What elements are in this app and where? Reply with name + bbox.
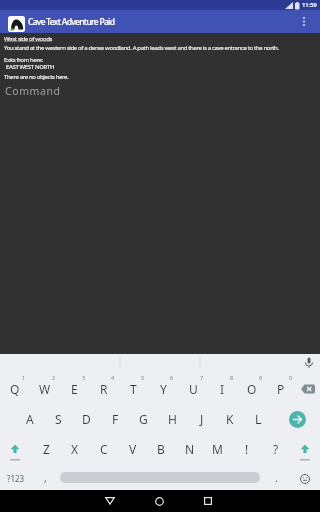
staticText: .	[275, 471, 278, 485]
staticText: 7	[200, 374, 204, 381]
staticText: West side of woods	[4, 35, 52, 43]
staticText: N	[185, 441, 195, 457]
staticText: Q	[10, 381, 20, 397]
staticText: 3	[82, 374, 86, 381]
button[interactable]: S	[44, 404, 73, 434]
staticText: S	[55, 411, 62, 427]
staticText: T	[130, 381, 137, 397]
staticText: 4	[111, 374, 115, 381]
button[interactable]	[290, 434, 320, 464]
button[interactable]	[280, 404, 314, 434]
staticText: !	[245, 441, 249, 457]
button[interactable]: A	[15, 404, 44, 434]
button[interactable]	[194, 490, 222, 512]
staticText: 2	[52, 374, 56, 381]
button[interactable]: F	[101, 404, 130, 434]
staticText: F	[112, 411, 119, 427]
button[interactable]	[296, 374, 320, 404]
button[interactable]	[60, 472, 260, 483]
staticText: H	[168, 411, 177, 427]
button[interactable]: Command	[0, 84, 200, 100]
button[interactable]: Q	[0, 374, 30, 404]
staticText: Command	[5, 84, 61, 98]
button[interactable]: O	[237, 374, 267, 404]
staticText: Y	[160, 381, 167, 397]
button[interactable]: V	[118, 434, 147, 464]
staticText: ,	[44, 471, 47, 485]
staticText: 0	[289, 374, 293, 381]
button[interactable]: I	[207, 374, 237, 404]
staticText: 1	[22, 374, 26, 381]
staticText: C	[100, 441, 108, 457]
staticText: ?	[273, 441, 279, 457]
staticText: J	[200, 411, 204, 427]
button[interactable]: J	[187, 404, 216, 434]
button[interactable]: ,	[35, 464, 55, 492]
staticText: 5	[141, 374, 145, 381]
staticText: There are no objects here.	[4, 73, 69, 81]
staticText: D	[82, 411, 91, 427]
staticText: E	[71, 381, 78, 397]
button[interactable]: ?123	[1, 464, 31, 492]
staticText: O	[247, 381, 257, 397]
button[interactable]	[0, 434, 30, 464]
button[interactable]: E	[59, 374, 89, 404]
button[interactable]: ?	[261, 434, 290, 464]
staticText: EAST WEST NORTH	[6, 63, 54, 71]
staticText: B	[157, 441, 165, 457]
staticText: V	[129, 441, 137, 457]
staticText: Cave Text Adventure Paid	[28, 16, 115, 28]
button[interactable]: W	[30, 374, 60, 404]
button[interactable]: Y	[148, 374, 178, 404]
button[interactable]: X	[60, 434, 89, 464]
button[interactable]: Z	[32, 434, 61, 464]
staticText: U	[189, 381, 198, 397]
staticText: L	[255, 411, 262, 427]
button[interactable]: R	[89, 374, 119, 404]
staticText: X	[71, 441, 79, 457]
button[interactable]: P	[266, 374, 296, 404]
button[interactable]: U	[178, 374, 208, 404]
staticText: 8	[230, 374, 234, 381]
button[interactable]: B	[146, 434, 175, 464]
button[interactable]: D	[72, 404, 101, 434]
staticText: ?123	[7, 473, 25, 484]
staticText: P	[277, 381, 285, 397]
staticText: M	[212, 441, 223, 457]
staticText: Exits from here:	[4, 56, 43, 64]
button[interactable]	[300, 474, 310, 484]
button[interactable]: G	[129, 404, 158, 434]
button[interactable]: .	[266, 464, 286, 492]
button[interactable]	[145, 490, 173, 512]
staticText: W	[39, 381, 51, 397]
button[interactable]	[296, 10, 314, 33]
button[interactable]: C	[89, 434, 118, 464]
button[interactable]: T	[118, 374, 148, 404]
button[interactable]: M	[203, 434, 232, 464]
staticText: I	[220, 381, 225, 397]
button[interactable]: L	[244, 404, 273, 434]
button[interactable]: !	[232, 434, 261, 464]
staticText: A	[26, 411, 34, 427]
staticText: G	[139, 411, 148, 427]
staticText: 11:59	[302, 1, 317, 9]
button[interactable]: N	[175, 434, 204, 464]
button[interactable]: H	[158, 404, 187, 434]
staticText: R	[100, 381, 108, 397]
button[interactable]: K	[215, 404, 244, 434]
staticText: 6	[170, 374, 174, 381]
button[interactable]	[304, 357, 314, 369]
staticText: You stand at the western side of a dense…	[4, 44, 279, 52]
staticText: K	[226, 411, 234, 427]
button[interactable]	[96, 490, 124, 512]
staticText: 9	[259, 374, 263, 381]
staticText: Z	[43, 441, 50, 457]
